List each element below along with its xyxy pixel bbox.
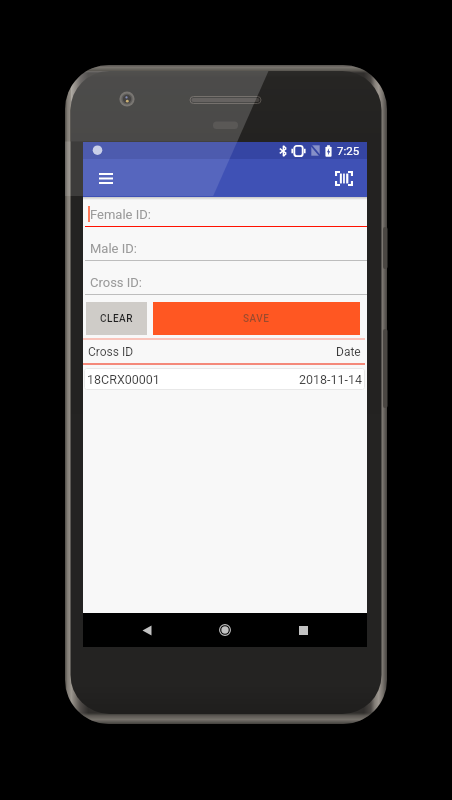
staticText: CLEAR <box>100 313 134 325</box>
staticText: 7:25 <box>337 144 360 157</box>
button[interactable]: Cross ID: <box>85 261 367 295</box>
button[interactable]: Male ID: <box>85 227 367 261</box>
button[interactable]: 18CRX00001 <box>84 368 365 390</box>
staticText: 18CRX00001 <box>87 372 160 387</box>
staticText: 2018-11-14 <box>299 372 363 387</box>
button[interactable]: Female ID: <box>85 200 367 227</box>
button[interactable]: Home <box>210 615 240 645</box>
button[interactable]: Back <box>132 615 162 645</box>
staticText: Male ID: <box>90 241 137 256</box>
button[interactable]: Recent apps <box>288 615 318 645</box>
button[interactable]: Open navigation menu <box>91 163 121 193</box>
staticText: SAVE <box>243 313 270 325</box>
staticText: Cross ID <box>88 345 134 359</box>
staticText: Date <box>336 345 361 359</box>
staticText: Cross ID: <box>90 275 143 290</box>
button[interactable]: SAVE <box>153 302 360 335</box>
button[interactable]: CLEAR <box>86 302 147 335</box>
staticText: Female ID: <box>90 207 151 222</box>
button[interactable]: Scan barcode <box>329 163 359 193</box>
